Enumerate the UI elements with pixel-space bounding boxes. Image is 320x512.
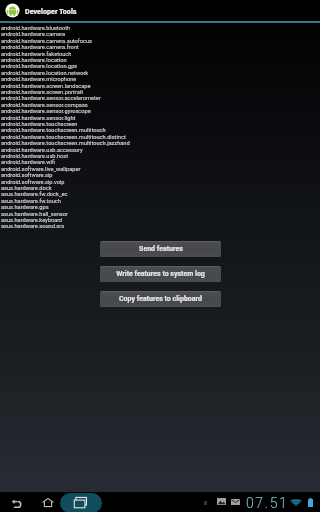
button[interactable]: android.hardware.touchscreen.multitouch: [0, 127, 320, 133]
button[interactable]: android.hardware.sensor.light: [0, 115, 320, 121]
staticText: asus.hardware.fw.dock_ec: [1, 191, 68, 197]
staticText: asus.hardware.sound.srs: [1, 223, 65, 229]
staticText: android.hardware.wifi: [1, 159, 56, 165]
button[interactable]: asus.hardware.sound.srs: [0, 223, 320, 229]
staticText: Write features to system log: [116, 270, 205, 278]
staticText: android.software.live_wallpaper: [1, 166, 81, 172]
button[interactable]: Recent apps: [74, 497, 87, 508]
staticText: android.software.sip.voip: [1, 179, 65, 185]
staticText: asus.hardware.fw.touch: [1, 198, 61, 204]
button[interactable]: Send features: [100, 241, 221, 257]
staticText: android.hardware.sensor.compass: [1, 102, 88, 108]
staticText: android.hardware.screen.landscape: [1, 83, 91, 89]
button[interactable]: asus.hardware.fw.dock_ec: [0, 191, 320, 197]
button[interactable]: android.hardware.microphone: [0, 76, 320, 82]
button[interactable]: android.hardware.screen.portrait: [0, 89, 320, 95]
staticText: android.hardware.location.network: [1, 70, 89, 76]
staticText: android.hardware.location: [1, 57, 67, 63]
staticText: android.software.sip: [1, 172, 53, 178]
staticText: android.hardware.sensor.light: [1, 115, 76, 121]
button[interactable]: android.hardware.camera.front: [0, 44, 320, 50]
staticText: android.hardware.sensor.gyroscope: [1, 108, 91, 114]
staticText: android.hardware.camera.autofocus: [1, 38, 92, 44]
button[interactable]: android.hardware.touchscreen.multitouch.…: [0, 140, 320, 146]
button[interactable]: asus.hardware.hall_sensor: [0, 211, 320, 217]
staticText: android.hardware.touchscreen.multitouch.…: [1, 140, 130, 146]
staticText: android.hardware.touchscreen: [1, 121, 78, 127]
staticText: android.hardware.location.gps: [1, 63, 78, 69]
staticText: asus.hardware.keyboard: [1, 217, 63, 223]
button[interactable]: android.hardware.location.network: [0, 70, 320, 76]
button[interactable]: android.hardware.location.gps: [0, 63, 320, 69]
button[interactable]: android.software.sip.voip: [0, 179, 320, 185]
staticText: android.hardware.touchscreen.multitouch.…: [1, 134, 126, 140]
button[interactable]: android.hardware.camera.autofocus: [0, 38, 320, 44]
staticText: asus.hardware.hall_sensor: [1, 211, 68, 217]
staticText: android.hardware.usb.accessory: [1, 147, 83, 153]
button[interactable]: asus.hardware.fw.touch: [0, 198, 320, 204]
staticText: android.hardware.camera.front: [1, 44, 79, 50]
button[interactable]: android.hardware.touchscreen.multitouch.…: [0, 134, 320, 140]
button[interactable]: android.hardware.bluetooth: [0, 25, 320, 31]
button[interactable]: asus.hardware.gps: [0, 204, 320, 210]
button[interactable]: android.software.live_wallpaper: [0, 166, 320, 172]
staticText: asus.hardware.gps: [1, 204, 49, 210]
button[interactable]: android.hardware.camera: [0, 31, 320, 37]
staticText: Send features: [139, 245, 183, 253]
button[interactable]: android.hardware.sensor.accelerometer: [0, 95, 320, 101]
staticText: 07.51: [246, 495, 289, 511]
button[interactable]: android.hardware.sensor.gyroscope: [0, 108, 320, 114]
staticText: asus.hardware.dock: [1, 185, 52, 191]
staticText: android.hardware.sensor.accelerometer: [1, 95, 101, 101]
button[interactable]: Copy features to clipboard: [100, 291, 221, 307]
staticText: android.hardware.screen.portrait: [1, 89, 84, 95]
button[interactable]: asus.hardware.dock: [0, 185, 320, 191]
staticText: android.hardware.usb.host: [1, 153, 69, 159]
button[interactable]: android.hardware.faketouch: [0, 51, 320, 57]
button[interactable]: android.hardware.wifi: [0, 159, 320, 165]
button[interactable]: Home: [42, 497, 54, 508]
staticText: Developer Tools: [25, 7, 77, 15]
button[interactable]: android.hardware.location: [0, 57, 320, 63]
button[interactable]: android.hardware.usb.host: [0, 153, 320, 159]
staticText: android.hardware.bluetooth: [1, 25, 71, 31]
staticText: Copy features to clipboard: [119, 295, 202, 303]
button[interactable]: Write features to system log: [100, 266, 221, 282]
button[interactable]: android.hardware.screen.landscape: [0, 83, 320, 89]
staticText: android.hardware.touchscreen.multitouch: [1, 127, 106, 133]
button[interactable]: android.hardware.touchscreen: [0, 121, 320, 127]
button[interactable]: Back: [11, 498, 22, 509]
staticText: android.hardware.faketouch: [1, 51, 72, 57]
button[interactable]: android.software.sip: [0, 172, 320, 178]
button[interactable]: android.hardware.usb.accessory: [0, 147, 320, 153]
button[interactable]: android.hardware.sensor.compass: [0, 102, 320, 108]
staticText: android.hardware.camera: [1, 31, 66, 37]
staticText: android.hardware.microphone: [1, 76, 77, 82]
button[interactable]: asus.hardware.keyboard: [0, 217, 320, 223]
